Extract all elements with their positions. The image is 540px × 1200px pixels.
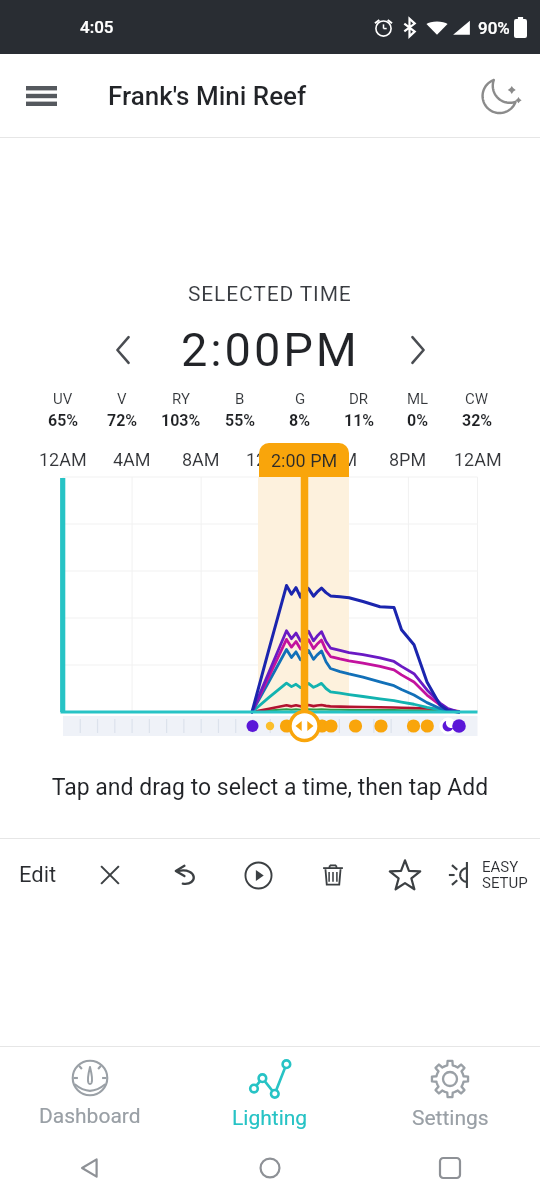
staticText: 8PM bbox=[389, 449, 427, 470]
staticText: B bbox=[235, 390, 245, 408]
button[interactable]: Play bbox=[230, 839, 286, 911]
staticText: 103% bbox=[161, 411, 201, 430]
staticText: 0% bbox=[407, 411, 429, 430]
staticText: RY bbox=[172, 390, 190, 408]
staticText: 72% bbox=[107, 411, 138, 430]
staticText: 55% bbox=[225, 411, 256, 430]
button[interactable]: Next time bbox=[391, 323, 445, 377]
button[interactable]: Undo bbox=[157, 839, 213, 911]
button[interactable]: Open navigation menu bbox=[13, 68, 69, 124]
staticText: 11% bbox=[344, 411, 375, 430]
button[interactable]: Easy setup bbox=[443, 839, 535, 911]
staticText: 12AM bbox=[454, 449, 502, 470]
button[interactable]: Previous time bbox=[96, 323, 150, 377]
button[interactable]: Night mode bbox=[476, 68, 532, 124]
staticText: V bbox=[117, 390, 127, 408]
staticText: Edit bbox=[19, 862, 57, 888]
staticText: 90% bbox=[478, 18, 510, 38]
button[interactable]: Settings bbox=[370, 1047, 530, 1135]
staticText: Dashboard bbox=[39, 1104, 141, 1129]
button[interactable]: Dashboard bbox=[10, 1047, 170, 1135]
staticText: Settings bbox=[412, 1106, 489, 1131]
staticText: 12PM bbox=[246, 449, 294, 470]
staticText: 8AM bbox=[182, 449, 220, 470]
staticText: 2:00PM bbox=[181, 322, 360, 377]
staticText: 8% bbox=[289, 411, 311, 430]
button[interactable]: Delete bbox=[305, 839, 361, 911]
staticText: 12AM bbox=[39, 449, 87, 470]
staticText: 32% bbox=[462, 411, 493, 430]
staticText: 4:05 bbox=[80, 17, 114, 37]
staticText: 2:00 PM bbox=[271, 450, 338, 471]
button[interactable]: Lighting bbox=[190, 1047, 350, 1135]
staticText: 4PM bbox=[320, 449, 358, 470]
staticText: ML bbox=[407, 390, 429, 408]
staticText: G bbox=[295, 390, 306, 408]
button[interactable]: Favorite bbox=[377, 839, 433, 911]
staticText: 4AM bbox=[113, 449, 151, 470]
button[interactable]: Edit bbox=[5, 839, 70, 911]
button[interactable]: Recents bbox=[360, 1135, 540, 1200]
staticText: DR bbox=[349, 390, 369, 408]
staticText: Frank's Mini Reef bbox=[108, 81, 307, 111]
button[interactable]: Home bbox=[180, 1135, 360, 1200]
button[interactable]: Back bbox=[0, 1135, 180, 1200]
staticText: 65% bbox=[48, 411, 79, 430]
button[interactable]: Cancel bbox=[82, 839, 138, 911]
staticText: UV bbox=[53, 390, 73, 408]
staticText: Lighting bbox=[232, 1106, 308, 1131]
staticText: SELECTED TIME bbox=[188, 282, 352, 307]
button[interactable]: 2:00 PM bbox=[259, 443, 349, 477]
staticText: CW bbox=[465, 390, 489, 408]
staticText: EASY SETUP bbox=[482, 858, 528, 892]
button[interactable]: Time slider bbox=[0, 713, 540, 743]
staticText: Tap and drag to select a time, then tap … bbox=[0, 774, 540, 801]
